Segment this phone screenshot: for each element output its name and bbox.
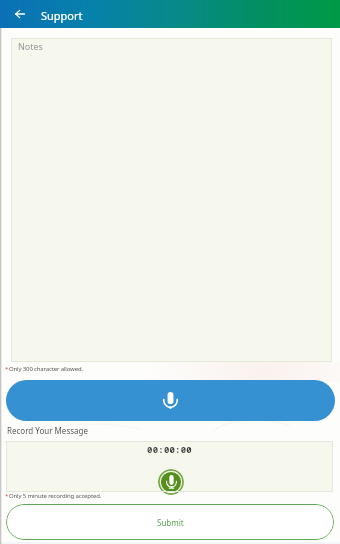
staticText: Notes <box>18 40 43 52</box>
button[interactable]: Start recording <box>158 469 184 495</box>
button[interactable]: Back <box>11 5 29 23</box>
staticText: Support <box>41 8 83 23</box>
button[interactable]: Record voice message <box>6 380 335 421</box>
staticText: * <box>5 492 9 500</box>
staticText: 00:00:00 <box>6 443 333 455</box>
staticText: Only 5 minute recording accepted. <box>9 492 102 500</box>
staticText: Submit <box>157 517 184 528</box>
button[interactable]: Submit <box>6 504 334 540</box>
staticText: Only 300 character allowed. <box>9 365 83 373</box>
staticText: * <box>5 365 9 373</box>
staticText: Record Your Message <box>7 425 88 436</box>
